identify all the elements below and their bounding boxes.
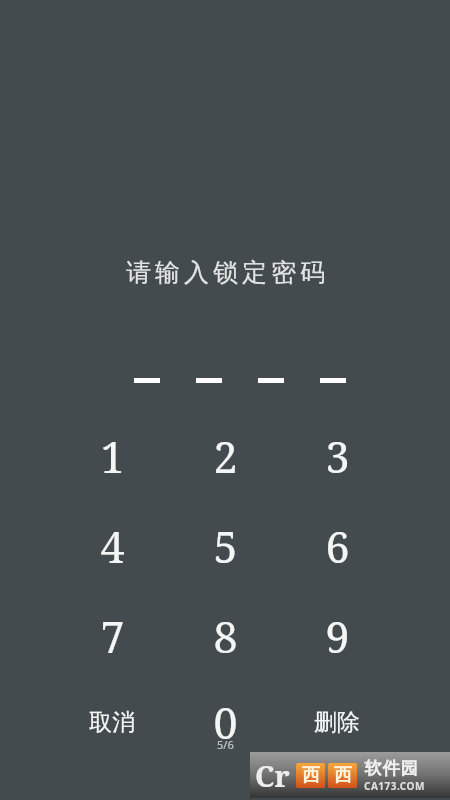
staticText: Cr [255, 756, 290, 795]
staticText: 4 [100, 517, 125, 576]
staticText: 1 [100, 427, 125, 486]
button[interactable]: 3 [290, 421, 384, 491]
staticText: 请输入锁定密码 [124, 257, 327, 288]
button[interactable]: 2 [178, 421, 272, 491]
staticText: 7 [100, 607, 125, 666]
button[interactable]: 4 [65, 511, 159, 581]
button[interactable]: 删除 [290, 692, 384, 752]
button[interactable]: 取消 [65, 692, 159, 752]
staticText: 删除 [314, 708, 360, 737]
staticText: 2 [213, 427, 238, 486]
staticText: 西 [334, 764, 352, 787]
button[interactable]: 6 [290, 511, 384, 581]
other: Watermark [250, 752, 450, 798]
staticText: CA173.COM [364, 779, 425, 793]
staticText: 6 [325, 517, 350, 576]
staticText: 8 [213, 607, 238, 666]
staticText: 西 [302, 764, 320, 787]
button[interactable]: 0 [178, 687, 272, 757]
button[interactable]: 5 [178, 511, 272, 581]
button[interactable]: 1 [65, 421, 159, 491]
staticText: 5 [213, 517, 238, 576]
staticText: 9 [325, 607, 350, 666]
staticText: 0 [213, 693, 238, 752]
button[interactable]: 8 [178, 601, 272, 671]
staticText: 取消 [89, 708, 135, 737]
button[interactable]: 9 [290, 601, 384, 671]
staticText: 3 [325, 427, 350, 486]
staticText: 5/6 [217, 737, 234, 752]
staticText: 软件园 [364, 758, 418, 779]
button[interactable]: 7 [65, 601, 159, 671]
